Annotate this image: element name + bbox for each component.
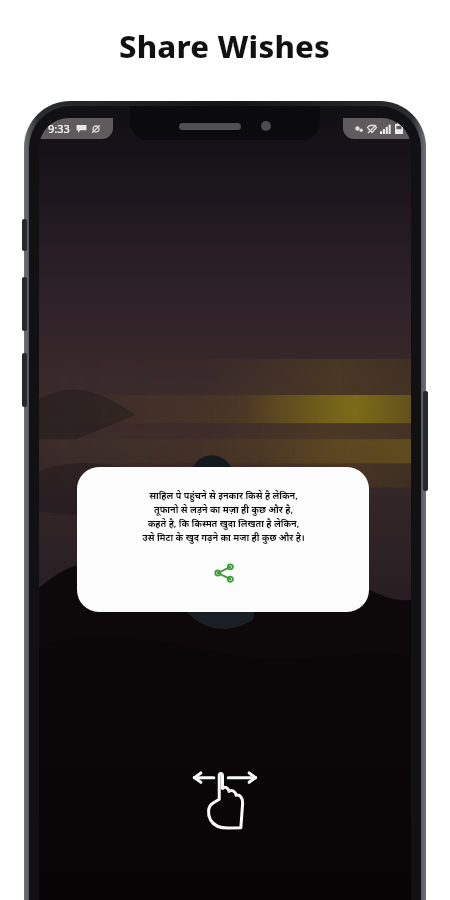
button[interactable]: Share — [209, 558, 239, 588]
staticText: Share Wishes — [119, 25, 331, 67]
button[interactable]: साहिल पे पहुंचने से इनकार किसे है लेकिन,… — [77, 467, 369, 612]
other: Swipe left or right — [185, 756, 265, 836]
staticText: साहिल पे पहुंचने से इनकार किसे है लेकिन,… — [142, 489, 305, 544]
staticText: 9:33 — [48, 121, 70, 136]
